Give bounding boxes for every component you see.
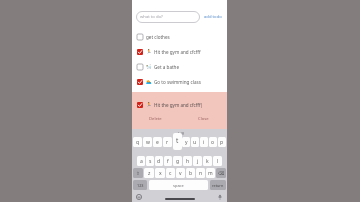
staticText: w — [146, 139, 150, 146]
staticText: c — [169, 170, 172, 177]
staticText: a — [140, 158, 143, 165]
button[interactable]: b — [186, 168, 195, 178]
staticText: o — [211, 139, 215, 146]
staticText: ⇧ — [136, 171, 140, 176]
staticText: l — [217, 158, 219, 165]
button[interactable]: Dictate — [216, 193, 224, 201]
button[interactable]: 🏊 — [132, 74, 227, 89]
button[interactable]: o — [209, 137, 217, 147]
staticText: m — [208, 170, 213, 177]
staticText: what to do? — [140, 14, 163, 20]
button[interactable]: Delete — [132, 116, 179, 122]
button[interactable]: s — [146, 156, 154, 166]
button[interactable]: 🏃 — [132, 44, 227, 59]
button[interactable]: Close — [179, 116, 227, 122]
button[interactable]: what to do? — [136, 11, 200, 23]
button[interactable]: z — [144, 168, 154, 178]
staticText: space — [173, 183, 184, 188]
button[interactable]: g — [173, 156, 182, 166]
button[interactable]: r — [163, 137, 172, 147]
button[interactable]: Emoji — [135, 193, 143, 201]
staticText: Close — [198, 116, 209, 122]
staticText: ⌫ — [218, 171, 225, 176]
button[interactable]: 🛀 — [132, 59, 227, 74]
staticText: i — [203, 139, 205, 146]
button[interactable]: add todo — [203, 13, 223, 21]
button[interactable]: Backspace — [216, 168, 226, 178]
staticText: q — [136, 139, 140, 146]
staticText: 🏃 — [146, 102, 152, 107]
button[interactable]: Shift — [133, 168, 143, 178]
button[interactable]: t — [173, 137, 181, 147]
button[interactable]: q — [133, 137, 142, 147]
button[interactable]: 🏃 — [132, 99, 227, 110]
staticText: t — [176, 136, 179, 145]
button[interactable]: k — [203, 156, 212, 166]
staticText: g — [176, 158, 180, 165]
staticText: Delete — [149, 116, 162, 122]
staticText: v — [179, 170, 182, 177]
staticText: r — [166, 139, 169, 146]
button[interactable]: space — [149, 180, 208, 190]
staticText: return — [212, 183, 224, 188]
button[interactable]: get clothes — [132, 29, 227, 44]
staticText: Get a bathe — [154, 64, 180, 70]
staticText: p — [220, 139, 224, 146]
staticText: 🏊 — [146, 79, 152, 84]
staticText: f — [167, 158, 169, 165]
staticText: y — [185, 139, 188, 146]
button[interactable]: m — [206, 168, 215, 178]
staticText: h — [186, 158, 190, 165]
button[interactable]: return — [210, 180, 226, 190]
staticText: j — [197, 158, 199, 165]
staticText: e — [156, 139, 159, 146]
staticText: z — [148, 170, 151, 177]
staticText: 123 — [137, 183, 144, 188]
staticText: Hit the gym and cfcfff — [154, 49, 201, 55]
staticText: u — [193, 139, 197, 146]
button[interactable]: h — [183, 156, 192, 166]
staticText: Go to swimming class — [154, 79, 201, 85]
staticText: t — [176, 139, 178, 146]
staticText: 🏃 — [146, 49, 152, 54]
staticText: add todo — [204, 14, 222, 20]
staticText: k — [206, 158, 209, 165]
staticText: s — [149, 158, 152, 165]
button[interactable]: y — [182, 137, 190, 147]
button[interactable]: n — [196, 168, 205, 178]
staticText: get clothes — [146, 34, 170, 40]
button[interactable]: d — [155, 156, 163, 166]
button[interactable]: u — [191, 137, 199, 147]
button[interactable]: i — [200, 137, 208, 147]
button[interactable]: c — [166, 168, 175, 178]
staticText: x — [159, 170, 162, 177]
button[interactable]: a — [137, 156, 145, 166]
staticText: 🛀 — [146, 64, 152, 69]
button[interactable]: l — [213, 156, 222, 166]
button[interactable]: v — [176, 168, 185, 178]
staticText: n — [199, 170, 203, 177]
button[interactable]: p — [218, 137, 226, 147]
button[interactable]: e — [153, 137, 162, 147]
button[interactable]: w — [143, 137, 152, 147]
button[interactable]: f — [164, 156, 172, 166]
staticText: d — [157, 158, 161, 165]
button[interactable]: Numbers keyboard — [133, 180, 147, 190]
button[interactable]: j — [193, 156, 202, 166]
button[interactable]: x — [155, 168, 165, 178]
staticText: b — [189, 170, 193, 177]
staticText: cfcfff — [176, 131, 184, 136]
staticText: Hit the gym and cfcfff| — [154, 102, 204, 108]
